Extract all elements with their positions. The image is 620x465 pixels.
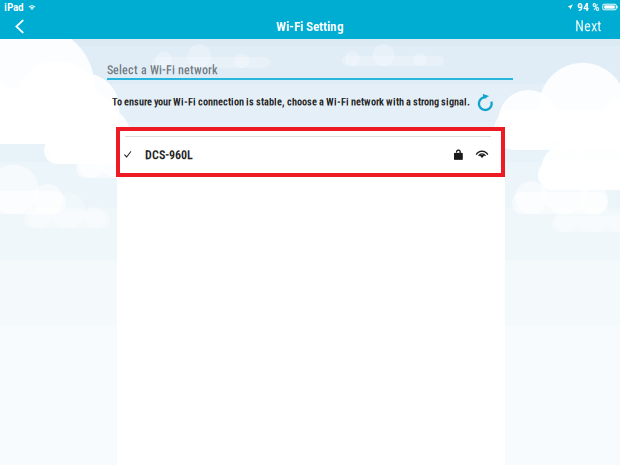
staticText: Next — [575, 18, 601, 35]
button[interactable]: DCS-960L — [119, 129, 501, 175]
staticText: To ensure your Wi-Fi connection is stabl… — [112, 96, 470, 108]
staticText: Wi-Fi Setting — [276, 19, 344, 34]
button[interactable]: Refresh — [474, 91, 497, 115]
staticText: iPad — [4, 0, 24, 14]
button[interactable]: Next — [568, 13, 608, 40]
staticText: Select a Wi-Fi network — [107, 63, 218, 77]
staticText: DCS-960L — [145, 148, 193, 162]
button[interactable]: Back — [7, 16, 32, 37]
staticText: 94 % — [577, 0, 599, 14]
